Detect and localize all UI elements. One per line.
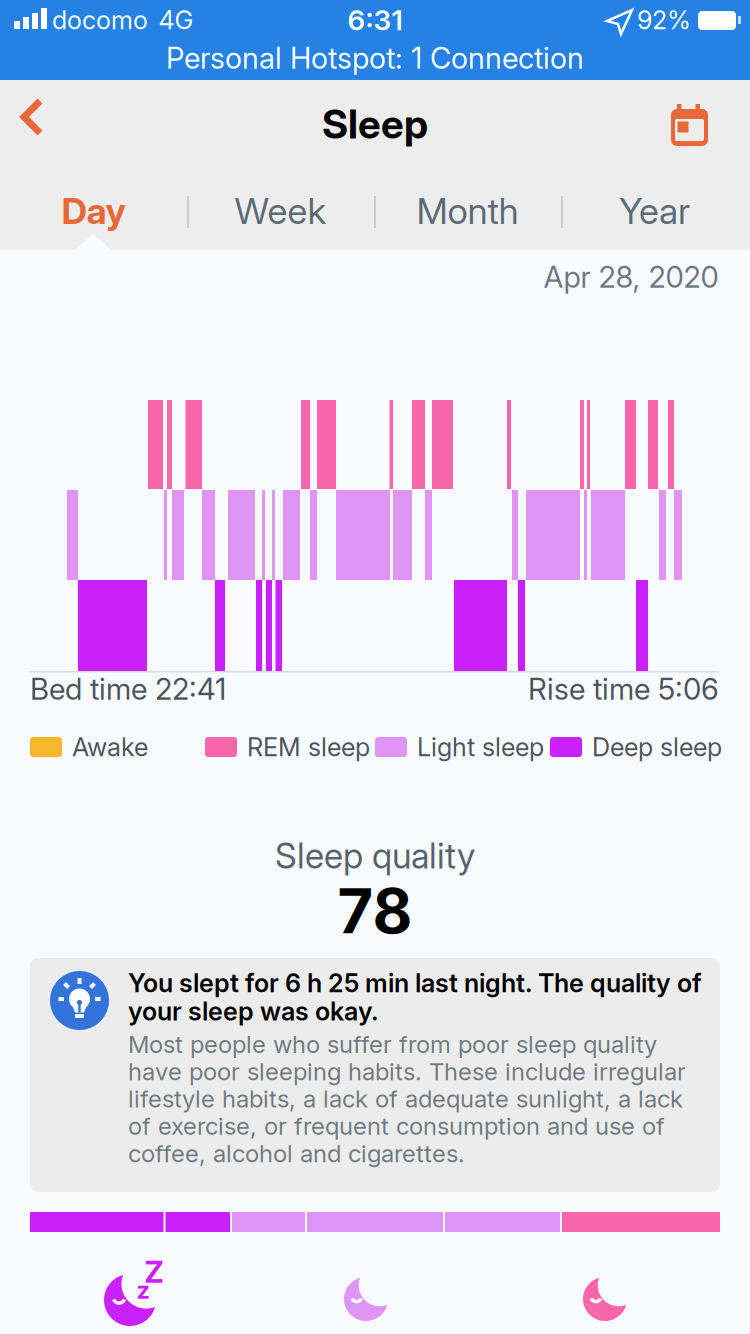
staticText: Awake [72, 732, 148, 762]
staticText: z [136, 1276, 149, 1304]
staticText: Bed time 22:41 [30, 672, 226, 706]
staticText: Sleep quality [275, 836, 475, 876]
staticText: Z [144, 1255, 163, 1289]
button[interactable]: Back [14, 90, 58, 144]
staticText: Deep sleep [592, 732, 722, 762]
button[interactable]: Year [561, 171, 748, 251]
staticText: 4G [158, 5, 193, 35]
staticText: Day [61, 190, 125, 232]
staticText: 6:31 [347, 3, 402, 36]
staticText: Sleep [322, 100, 428, 148]
staticText: Rise time 5:06 [528, 672, 719, 706]
button[interactable]: Month [375, 171, 560, 251]
staticText: Personal Hotspot: 1 Connection [166, 41, 584, 75]
staticText: Year [619, 190, 690, 232]
staticText: Week [234, 190, 326, 232]
staticText: Most people who suffer from poor sleep q… [128, 1030, 686, 1168]
staticText: docomo [52, 5, 148, 35]
staticText: Month [416, 190, 518, 232]
staticText: Apr 28, 2020 [543, 260, 718, 294]
staticText: 92% [637, 5, 691, 35]
button[interactable]: Day [0, 171, 186, 251]
button[interactable]: Week [188, 171, 373, 251]
staticText: REM sleep [247, 732, 370, 762]
staticText: Light sleep [417, 732, 544, 762]
staticText: 78 [337, 875, 412, 947]
button[interactable]: Calendar [664, 100, 714, 150]
staticText: You slept for 6 h 25 min last night. The… [128, 968, 702, 1026]
